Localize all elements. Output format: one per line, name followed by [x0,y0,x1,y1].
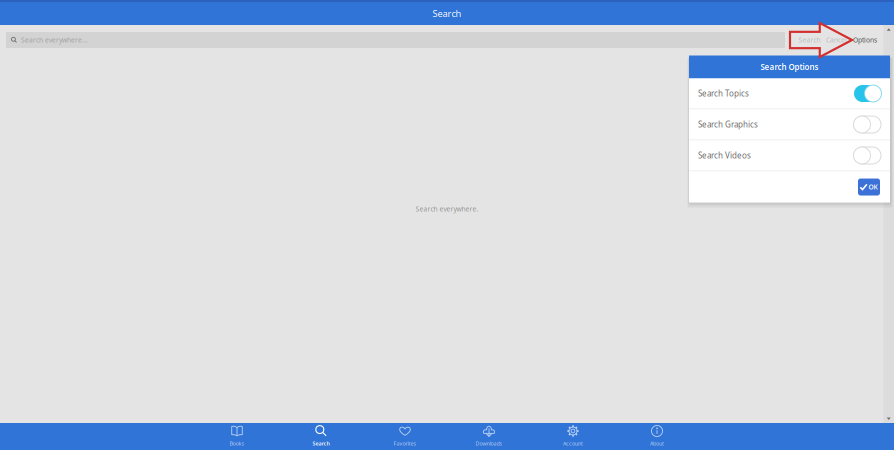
button[interactable]: Search [796,32,823,48]
staticText: Search Videos [698,150,751,161]
button[interactable]: About [615,423,699,450]
staticText: Account [563,440,583,447]
button[interactable]: Books [195,423,279,450]
button[interactable]: Search Graphics [689,109,890,139]
button[interactable]: OK [858,178,880,195]
staticText: Favorites [393,440,416,447]
button[interactable]: Scroll down [883,414,894,423]
staticText: Search Options [760,62,818,72]
button[interactable]: Search everywhere... [6,32,785,48]
button[interactable]: Search Videos [689,140,890,170]
button[interactable]: Favorites [363,423,447,450]
staticText: Search Graphics [698,119,758,130]
staticText: Books [229,440,244,447]
staticText: Search [432,7,461,20]
button[interactable]: Cancel [823,32,850,48]
button[interactable]: Scroll up [883,25,894,34]
button[interactable]: Search Topics [689,78,890,108]
staticText: Search [798,36,820,44]
button[interactable]: Downloads [447,423,531,450]
button[interactable]: Search [279,423,363,450]
staticText: Cancel [826,36,847,44]
staticText: About [650,440,664,447]
staticText: Search [312,440,329,447]
button[interactable]: Account [531,423,615,450]
staticText: Search Topics [698,88,749,99]
staticText: Search everywhere. [415,205,478,213]
button[interactable]: Options [850,32,880,48]
staticText: Search everywhere... [21,36,88,44]
staticText: OK [868,183,877,191]
staticText: Downloads [475,440,502,447]
staticText: Options [853,36,877,44]
